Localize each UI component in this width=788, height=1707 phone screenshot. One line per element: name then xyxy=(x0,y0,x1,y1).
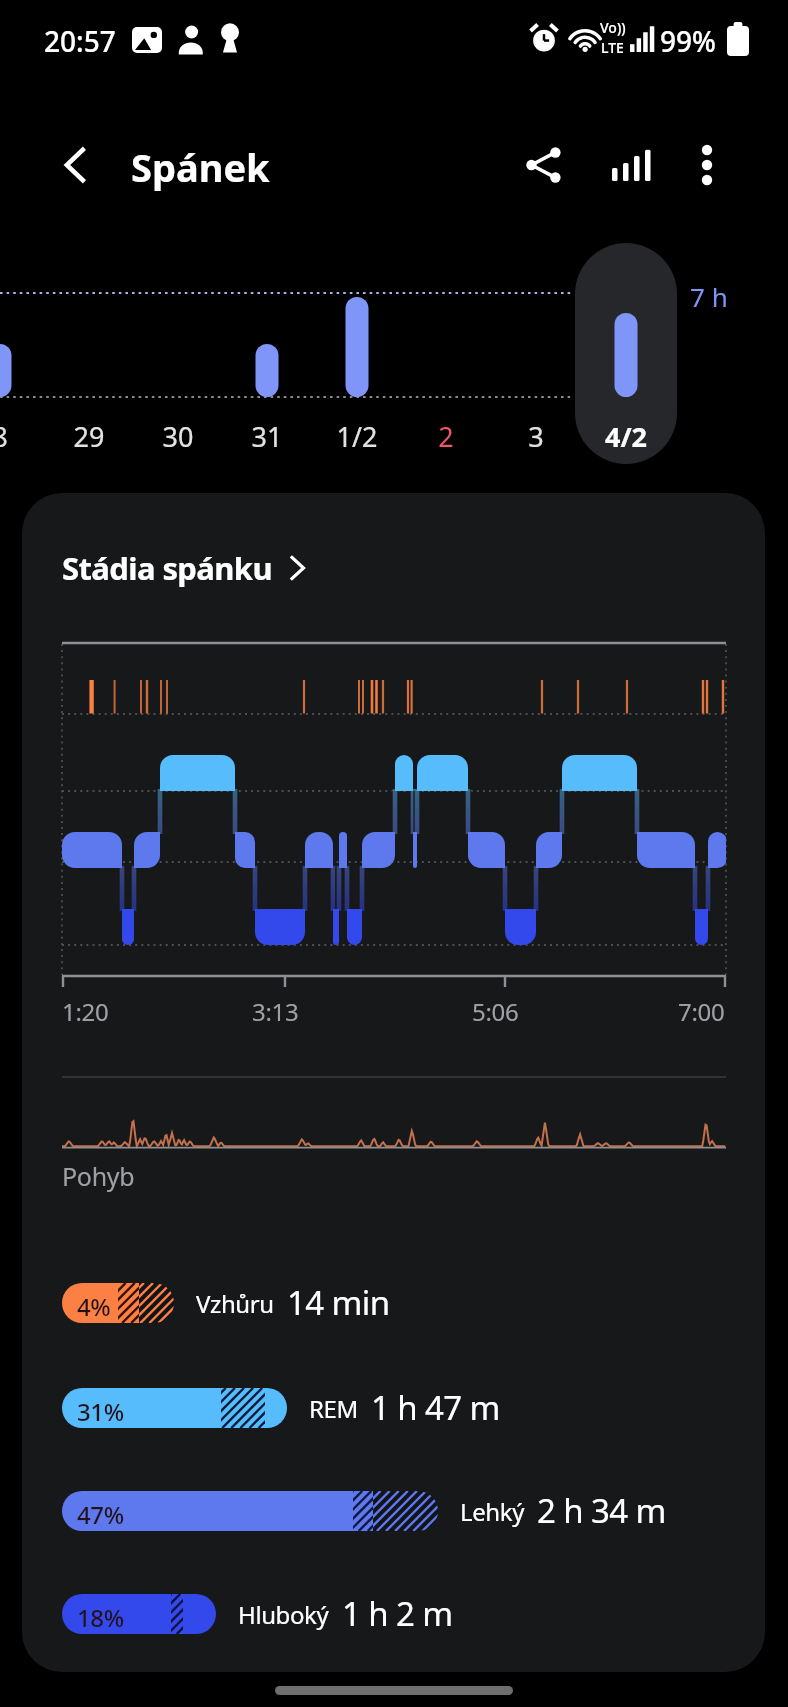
staticText: 14 min xyxy=(287,1280,390,1325)
button[interactable]: Share xyxy=(510,131,578,199)
staticText: Spánek xyxy=(131,141,270,193)
staticText: 5:06 xyxy=(472,995,519,1028)
staticText: 18% xyxy=(77,1601,124,1634)
staticText: 1/2 xyxy=(312,418,402,455)
staticText: Pohyb xyxy=(62,1159,135,1193)
staticText: 3:13 xyxy=(252,995,299,1028)
staticText: 2 h 34 m xyxy=(537,1488,666,1533)
staticText: 4% xyxy=(77,1290,111,1323)
staticText: 7:00 xyxy=(678,995,725,1028)
staticText: 1:20 xyxy=(62,995,109,1028)
button[interactable]: Back xyxy=(44,131,112,199)
staticText: 7 h xyxy=(690,279,728,314)
staticText: 8 xyxy=(0,418,45,455)
staticText: LTE xyxy=(601,38,624,57)
staticText: REM xyxy=(309,1392,358,1425)
button[interactable] xyxy=(575,243,677,464)
staticText: 4/2 xyxy=(581,418,671,455)
staticText: 99% xyxy=(660,22,716,60)
button[interactable]: Stádia spánku xyxy=(62,547,305,589)
staticText: 29 xyxy=(44,418,134,455)
button[interactable]: Statistics xyxy=(595,131,663,199)
staticText: Vzhůru xyxy=(196,1287,274,1320)
staticText: Lehký xyxy=(460,1495,524,1528)
staticText: Stádia spánku xyxy=(62,547,273,589)
staticText: 31% xyxy=(77,1395,124,1428)
staticText: 1 h 47 m xyxy=(371,1385,500,1430)
staticText: 31 xyxy=(222,418,312,455)
staticText: 20:57 xyxy=(44,22,116,60)
staticText: 3 xyxy=(491,418,581,455)
staticText: 1 h 2 m xyxy=(342,1591,453,1636)
staticText: 47% xyxy=(77,1498,124,1531)
staticText: Vo)) xyxy=(600,18,626,37)
button[interactable]: More options xyxy=(673,131,741,199)
staticText: Hluboký xyxy=(238,1598,329,1631)
staticText: 2 xyxy=(401,418,491,455)
staticText: 30 xyxy=(133,418,223,455)
